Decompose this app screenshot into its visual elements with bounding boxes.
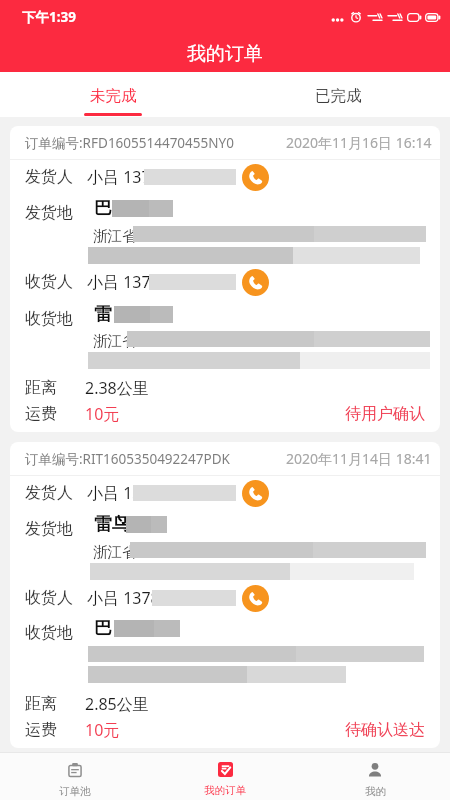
staticText: 订单池 — [59, 785, 91, 798]
staticText: 雷鸟 — [94, 513, 130, 536]
staticText: 浙江省 — [93, 227, 137, 245]
staticText: 我的 — [365, 785, 386, 798]
staticText: 10元 — [85, 719, 120, 741]
staticText: 待用户确认 — [345, 404, 425, 424]
staticText: 小吕 1379 — [87, 271, 160, 293]
staticText: 巴 — [94, 617, 112, 640]
button[interactable]: 我的 — [300, 753, 450, 800]
button[interactable]: 拨打电话 — [242, 269, 269, 296]
staticText: 收货人 — [25, 272, 73, 292]
staticText: 收货地 — [25, 309, 73, 329]
button[interactable]: 订单池 — [0, 753, 150, 800]
staticText: 已完成 — [315, 86, 362, 106]
button[interactable]: 已完成 — [225, 72, 450, 117]
staticText: 2.85公里 — [85, 693, 149, 715]
staticText: 运费 — [25, 720, 57, 740]
staticText: 运费 — [25, 404, 57, 424]
staticText: 发货地 — [25, 519, 73, 539]
staticText: 小吕 13 — [87, 482, 142, 504]
button[interactable]: 订单编号:RIT1605350492247PDK — [10, 442, 440, 748]
staticText: 订单编号:RIT1605350492247PDK — [25, 450, 230, 468]
staticText: 发货人 — [25, 483, 73, 503]
staticText: 发货地 — [25, 203, 73, 223]
staticText: 10元 — [85, 403, 120, 425]
staticText: 我的订单 — [187, 42, 263, 66]
button[interactable]: 我的订单 — [150, 753, 300, 800]
button[interactable]: 拨打电话 — [242, 164, 269, 191]
staticText: 距离 — [25, 694, 57, 714]
staticText: 待确认送达 — [345, 720, 425, 740]
staticText: 巴 — [94, 197, 112, 220]
button[interactable]: 拨打电话 — [242, 585, 269, 612]
button[interactable]: 未完成 — [0, 72, 225, 117]
staticText: 距离 — [25, 378, 57, 398]
staticText: 小吕 1378 — [87, 587, 160, 609]
staticText: 收货地 — [25, 623, 73, 643]
staticText: 2.38公里 — [85, 377, 149, 399]
staticText: 浙江省 — [93, 332, 137, 350]
staticText: 发货人 — [25, 167, 73, 187]
staticText: 雷 — [94, 303, 112, 326]
staticText: 我的订单 — [204, 784, 246, 797]
button[interactable]: 订单编号:RFD1605514470455NY0 — [10, 126, 440, 432]
staticText: 订单编号:RFD1605514470455NY0 — [25, 134, 234, 152]
button[interactable]: 拨打电话 — [242, 480, 269, 507]
staticText: 小吕 137 — [87, 166, 151, 188]
staticText: 浙江省 — [93, 543, 137, 561]
staticText: 2020年11月16日 16:14 — [286, 133, 432, 152]
staticText: 2020年11月14日 18:41 — [286, 449, 432, 468]
staticText: 未完成 — [90, 86, 137, 106]
staticText: 下午1:39 — [22, 8, 76, 26]
staticText: 收货人 — [25, 588, 73, 608]
